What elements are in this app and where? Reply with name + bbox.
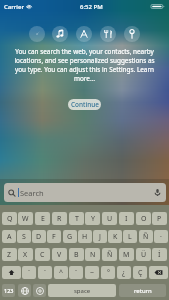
button[interactable]: Ñ xyxy=(102,248,117,261)
button[interactable]: Continue xyxy=(68,99,101,110)
staticText: A xyxy=(7,232,12,242)
staticText: O xyxy=(141,214,147,224)
staticText: · xyxy=(160,232,162,242)
button[interactable]: ` xyxy=(22,266,36,279)
button[interactable]: G xyxy=(63,230,77,243)
staticText: J xyxy=(99,232,101,242)
button[interactable]: K xyxy=(108,230,122,243)
staticText: B xyxy=(74,250,79,260)
staticText: ~ xyxy=(90,268,95,278)
button[interactable]: R xyxy=(52,212,67,225)
staticText: İ xyxy=(158,250,161,260)
button[interactable]: Search xyxy=(4,183,166,202)
staticText: N xyxy=(90,250,96,260)
button[interactable]: Ü xyxy=(136,248,151,261)
staticText: Ü xyxy=(141,250,147,260)
button[interactable]: D xyxy=(32,230,46,243)
staticText: R xyxy=(57,214,62,224)
button[interactable]: Y xyxy=(85,212,100,225)
staticText: Q xyxy=(7,214,13,224)
staticText: Search xyxy=(20,188,44,198)
staticText: Ç xyxy=(138,268,143,278)
staticText: ` xyxy=(28,268,30,278)
staticText: ^ xyxy=(59,268,64,278)
button[interactable]: ~ xyxy=(85,266,99,279)
staticText: 6:52 PM xyxy=(80,3,103,11)
staticText: E xyxy=(41,214,45,224)
button[interactable]: E xyxy=(35,212,50,225)
staticText: space xyxy=(74,287,91,295)
staticText: ´ xyxy=(44,268,46,278)
button[interactable]: Restaurants xyxy=(100,26,116,42)
button[interactable]: M xyxy=(119,248,134,261)
button[interactable]: L xyxy=(123,230,137,243)
button[interactable]: Ç xyxy=(133,266,147,279)
button[interactable]: ´ xyxy=(38,266,52,279)
button[interactable]: J xyxy=(93,230,107,243)
button[interactable]: İ xyxy=(152,248,167,261)
button[interactable]: A xyxy=(2,230,16,243)
staticText: ¿ xyxy=(122,268,126,278)
button[interactable]: N xyxy=(85,248,100,261)
button[interactable]: V xyxy=(52,248,67,261)
button[interactable]: Shift xyxy=(2,266,21,279)
staticText: K xyxy=(113,232,118,242)
staticText: Y xyxy=(91,214,95,224)
staticText: Z xyxy=(7,250,12,260)
staticText: G xyxy=(67,232,73,242)
staticText: D xyxy=(36,232,42,242)
staticText: T xyxy=(75,214,79,224)
button[interactable]: ¨ xyxy=(69,266,83,279)
staticText: L xyxy=(128,232,132,242)
button[interactable]: Ñ xyxy=(139,230,153,243)
staticText: W xyxy=(22,214,29,224)
staticText: V xyxy=(57,250,62,260)
button[interactable]: H xyxy=(78,230,92,243)
button[interactable]: 123 xyxy=(2,284,15,297)
staticText: F xyxy=(52,232,56,242)
button[interactable]: W xyxy=(18,212,33,225)
button[interactable]: Z xyxy=(2,248,17,261)
button[interactable]: X xyxy=(18,248,33,261)
other: Dictate xyxy=(153,188,162,197)
button[interactable]: ° xyxy=(101,266,115,279)
button[interactable]: T xyxy=(69,212,84,225)
button[interactable]: U xyxy=(102,212,117,225)
staticText: You can search the web, your contacts, n… xyxy=(13,47,156,83)
staticText: Carrier xyxy=(4,3,24,11)
button[interactable]: I xyxy=(119,212,134,225)
button[interactable]: Maps xyxy=(124,26,140,42)
button[interactable]: Change keyboard xyxy=(18,284,31,297)
button[interactable]: O xyxy=(136,212,151,225)
staticText: Ñ xyxy=(143,232,149,242)
button[interactable]: C xyxy=(35,248,50,261)
staticText: P xyxy=(157,214,162,224)
staticText: Continue xyxy=(71,100,99,109)
button[interactable]: B xyxy=(69,248,84,261)
button[interactable]: return xyxy=(119,284,166,297)
staticText: U xyxy=(107,214,113,224)
button[interactable]: ¿ xyxy=(117,266,131,279)
staticText: 123 xyxy=(4,287,14,294)
staticText: X xyxy=(23,250,28,260)
staticText: S xyxy=(22,232,26,242)
staticText: Ñ xyxy=(107,250,113,260)
button[interactable]: S xyxy=(17,230,31,243)
button[interactable]: Settings xyxy=(33,284,46,297)
button[interactable]: space xyxy=(48,284,116,297)
button[interactable]: · xyxy=(154,230,168,243)
button[interactable]: Backspace xyxy=(149,266,168,279)
button[interactable]: ^ xyxy=(54,266,68,279)
button[interactable]: F xyxy=(47,230,61,243)
button[interactable]: P xyxy=(152,212,167,225)
button[interactable]: App Store xyxy=(76,26,92,42)
button[interactable]: Music xyxy=(52,26,68,42)
staticText: I xyxy=(125,214,128,224)
staticText: C xyxy=(40,250,45,260)
staticText: ° xyxy=(107,268,110,278)
button[interactable]: Safari xyxy=(29,26,45,42)
staticText: H xyxy=(82,232,88,242)
button[interactable]: Q xyxy=(2,212,17,225)
staticText: ¨ xyxy=(74,268,79,278)
staticText: return xyxy=(134,287,152,295)
